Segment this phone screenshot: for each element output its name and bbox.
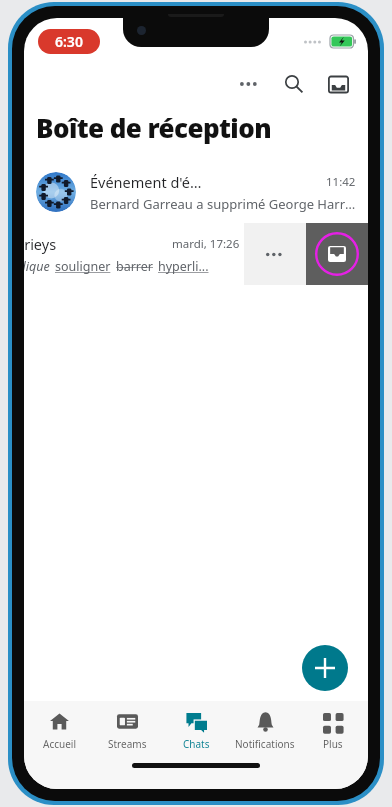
staticText: 6:30 bbox=[55, 32, 83, 51]
staticText: hyperli... bbox=[158, 258, 209, 275]
staticText: Notifications bbox=[235, 737, 295, 751]
button[interactable]: Plus d'actions bbox=[244, 223, 306, 285]
staticText: Plus bbox=[323, 737, 343, 751]
staticText: Boîte de réception bbox=[36, 110, 272, 145]
button[interactable]: Archiver bbox=[316, 62, 360, 106]
staticText: Streams bbox=[108, 737, 147, 751]
button[interactable]: Nouvelle conversation bbox=[302, 645, 348, 691]
staticText: souligner bbox=[55, 258, 111, 275]
button[interactable]: Notifications bbox=[231, 701, 299, 761]
staticText: 11:42 bbox=[326, 174, 356, 190]
button[interactable]: Rechercher bbox=[272, 62, 316, 106]
staticText: Événement d'équipe bbox=[90, 172, 208, 192]
staticText: Serieys bbox=[24, 234, 57, 254]
staticText: Chats bbox=[183, 737, 210, 751]
button[interactable]: Archiver la conversation bbox=[306, 223, 368, 285]
staticText: italique bbox=[24, 258, 50, 275]
button[interactable]: Streams bbox=[93, 701, 161, 761]
button[interactable]: Plus bbox=[299, 701, 367, 761]
staticText: mardi, 17:26 bbox=[172, 236, 240, 252]
button[interactable]: Événement d'équipe bbox=[24, 161, 368, 223]
button[interactable]: Chats bbox=[162, 701, 230, 761]
staticText: Bernard Garreau a supprimé George Harris… bbox=[90, 195, 356, 213]
button[interactable]: Plus d'options bbox=[228, 62, 272, 106]
button[interactable]: Accueil bbox=[25, 701, 93, 761]
staticText: barrer bbox=[116, 258, 153, 275]
staticText: Accueil bbox=[43, 737, 76, 751]
